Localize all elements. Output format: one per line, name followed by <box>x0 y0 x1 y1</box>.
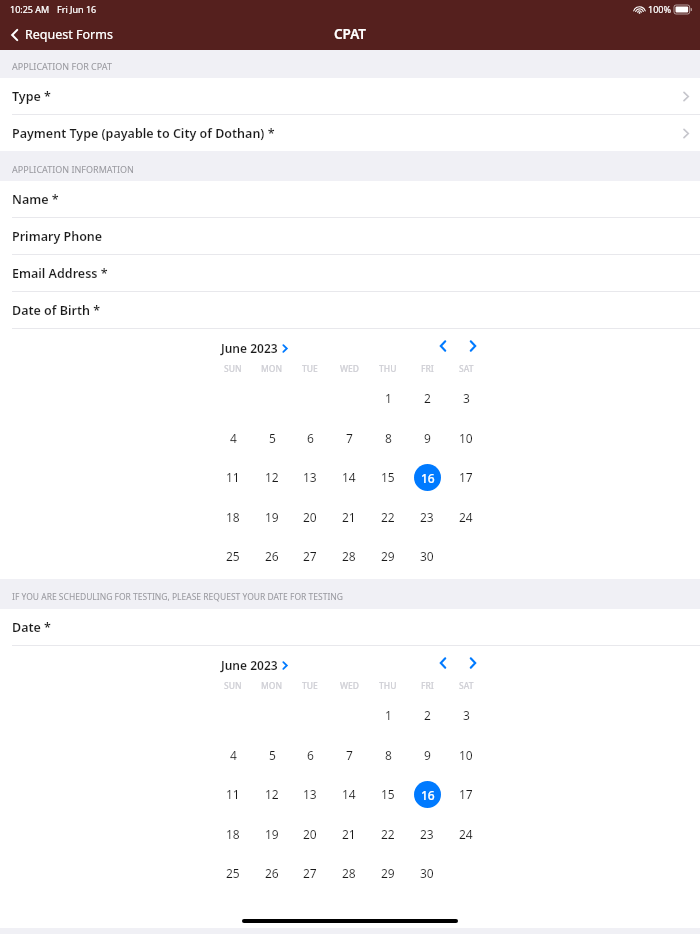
button[interactable]: 19 <box>257 819 287 849</box>
staticText: 3 <box>463 390 470 406</box>
staticText: 26 <box>265 548 279 564</box>
button[interactable]: 3 <box>451 700 481 730</box>
staticText: 2 <box>424 707 431 723</box>
button[interactable]: 17 <box>451 462 481 492</box>
button[interactable]: 10 <box>451 423 481 453</box>
staticText: 5 <box>269 430 276 446</box>
button[interactable]: 21 <box>334 502 364 532</box>
staticText: 12 <box>265 469 279 485</box>
button[interactable]: 6 <box>295 423 325 453</box>
staticText: June 2023 <box>221 340 278 356</box>
button[interactable]: 27 <box>295 541 325 571</box>
staticText: MON <box>261 680 283 692</box>
button[interactable]: 12 <box>257 462 287 492</box>
staticText: APPLICATION FOR CPAT <box>12 60 112 72</box>
button[interactable]: 26 <box>257 858 287 888</box>
button[interactable]: 9 <box>412 423 442 453</box>
button[interactable]: 3 <box>451 383 481 413</box>
button[interactable]: 17 <box>451 779 481 809</box>
button[interactable]: June 2023 <box>221 340 288 356</box>
button[interactable]: 20 <box>295 502 325 532</box>
button[interactable]: Date * <box>0 609 700 646</box>
button[interactable]: Email Address * <box>0 255 700 292</box>
staticText: 100% <box>648 3 671 15</box>
button[interactable]: Primary Phone <box>0 218 700 255</box>
button[interactable]: 14 <box>334 779 364 809</box>
staticText: 10 <box>459 430 473 446</box>
button[interactable]: 4 <box>218 740 248 770</box>
button[interactable]: 11 <box>218 462 248 492</box>
button[interactable]: 22 <box>373 819 403 849</box>
button[interactable]: Request Forms <box>8 26 113 43</box>
button[interactable]: 16 <box>412 779 442 809</box>
button[interactable]: 2 <box>412 700 442 730</box>
button[interactable]: Next month <box>463 653 483 673</box>
staticText: 16 <box>421 787 435 803</box>
button[interactable]: 1 <box>373 383 403 413</box>
button[interactable]: Previous month <box>433 336 453 356</box>
staticText: 3 <box>463 707 470 723</box>
button[interactable]: 24 <box>451 502 481 532</box>
staticText: 10:25 AM <box>10 3 50 15</box>
button[interactable]: 29 <box>373 541 403 571</box>
button[interactable]: 28 <box>334 858 364 888</box>
button[interactable]: 19 <box>257 502 287 532</box>
button[interactable]: 16 <box>412 462 442 492</box>
button[interactable]: Next month <box>463 336 483 356</box>
button[interactable]: 15 <box>373 462 403 492</box>
button[interactable]: 27 <box>295 858 325 888</box>
button[interactable]: 25 <box>218 541 248 571</box>
staticText: Primary Phone <box>12 228 103 245</box>
button[interactable]: 6 <box>295 740 325 770</box>
button[interactable]: 10 <box>451 740 481 770</box>
button[interactable]: 22 <box>373 502 403 532</box>
button[interactable]: 14 <box>334 462 364 492</box>
button[interactable]: Name * <box>0 181 700 218</box>
button[interactable]: 13 <box>295 779 325 809</box>
staticText: 9 <box>424 430 431 446</box>
button[interactable]: 15 <box>373 779 403 809</box>
staticText: IF YOU ARE SCHEDULING FOR TESTING, PLEAS… <box>12 591 343 603</box>
button[interactable]: 18 <box>218 502 248 532</box>
button[interactable]: 30 <box>412 858 442 888</box>
button[interactable]: 25 <box>218 858 248 888</box>
button[interactable]: Previous month <box>433 653 453 673</box>
button[interactable]: 24 <box>451 819 481 849</box>
staticText: 9 <box>424 747 431 763</box>
staticText: Date of Birth * <box>12 302 101 319</box>
button[interactable]: 5 <box>257 423 287 453</box>
staticText: FRI <box>421 680 434 692</box>
button[interactable]: 26 <box>257 541 287 571</box>
button[interactable]: 8 <box>373 423 403 453</box>
button[interactable]: 5 <box>257 740 287 770</box>
staticText: Type * <box>12 88 51 105</box>
button[interactable]: 30 <box>412 541 442 571</box>
button[interactable]: 23 <box>412 819 442 849</box>
staticText: 29 <box>381 548 395 564</box>
button[interactable]: 23 <box>412 502 442 532</box>
button[interactable]: 7 <box>334 423 364 453</box>
button[interactable]: Type * <box>0 78 700 115</box>
button[interactable]: 9 <box>412 740 442 770</box>
button[interactable]: 7 <box>334 740 364 770</box>
button[interactable]: 12 <box>257 779 287 809</box>
button[interactable]: 4 <box>218 423 248 453</box>
button[interactable]: 11 <box>218 779 248 809</box>
button[interactable]: 20 <box>295 819 325 849</box>
button[interactable]: Date of Birth * <box>0 292 700 329</box>
button[interactable]: June 2023 <box>221 657 288 673</box>
button[interactable]: 18 <box>218 819 248 849</box>
button[interactable]: 29 <box>373 858 403 888</box>
staticText: WED <box>340 680 359 692</box>
button[interactable]: 13 <box>295 462 325 492</box>
staticText: Payment Type (payable to City of Dothan)… <box>12 125 275 142</box>
button[interactable]: 21 <box>334 819 364 849</box>
button[interactable]: 2 <box>412 383 442 413</box>
button[interactable]: 8 <box>373 740 403 770</box>
staticText: 17 <box>459 786 473 802</box>
button[interactable]: Payment Type (payable to City of Dothan)… <box>0 115 700 151</box>
staticText: SUN <box>224 680 242 692</box>
button[interactable]: 1 <box>373 700 403 730</box>
button[interactable]: 28 <box>334 541 364 571</box>
staticText: 27 <box>303 548 317 564</box>
